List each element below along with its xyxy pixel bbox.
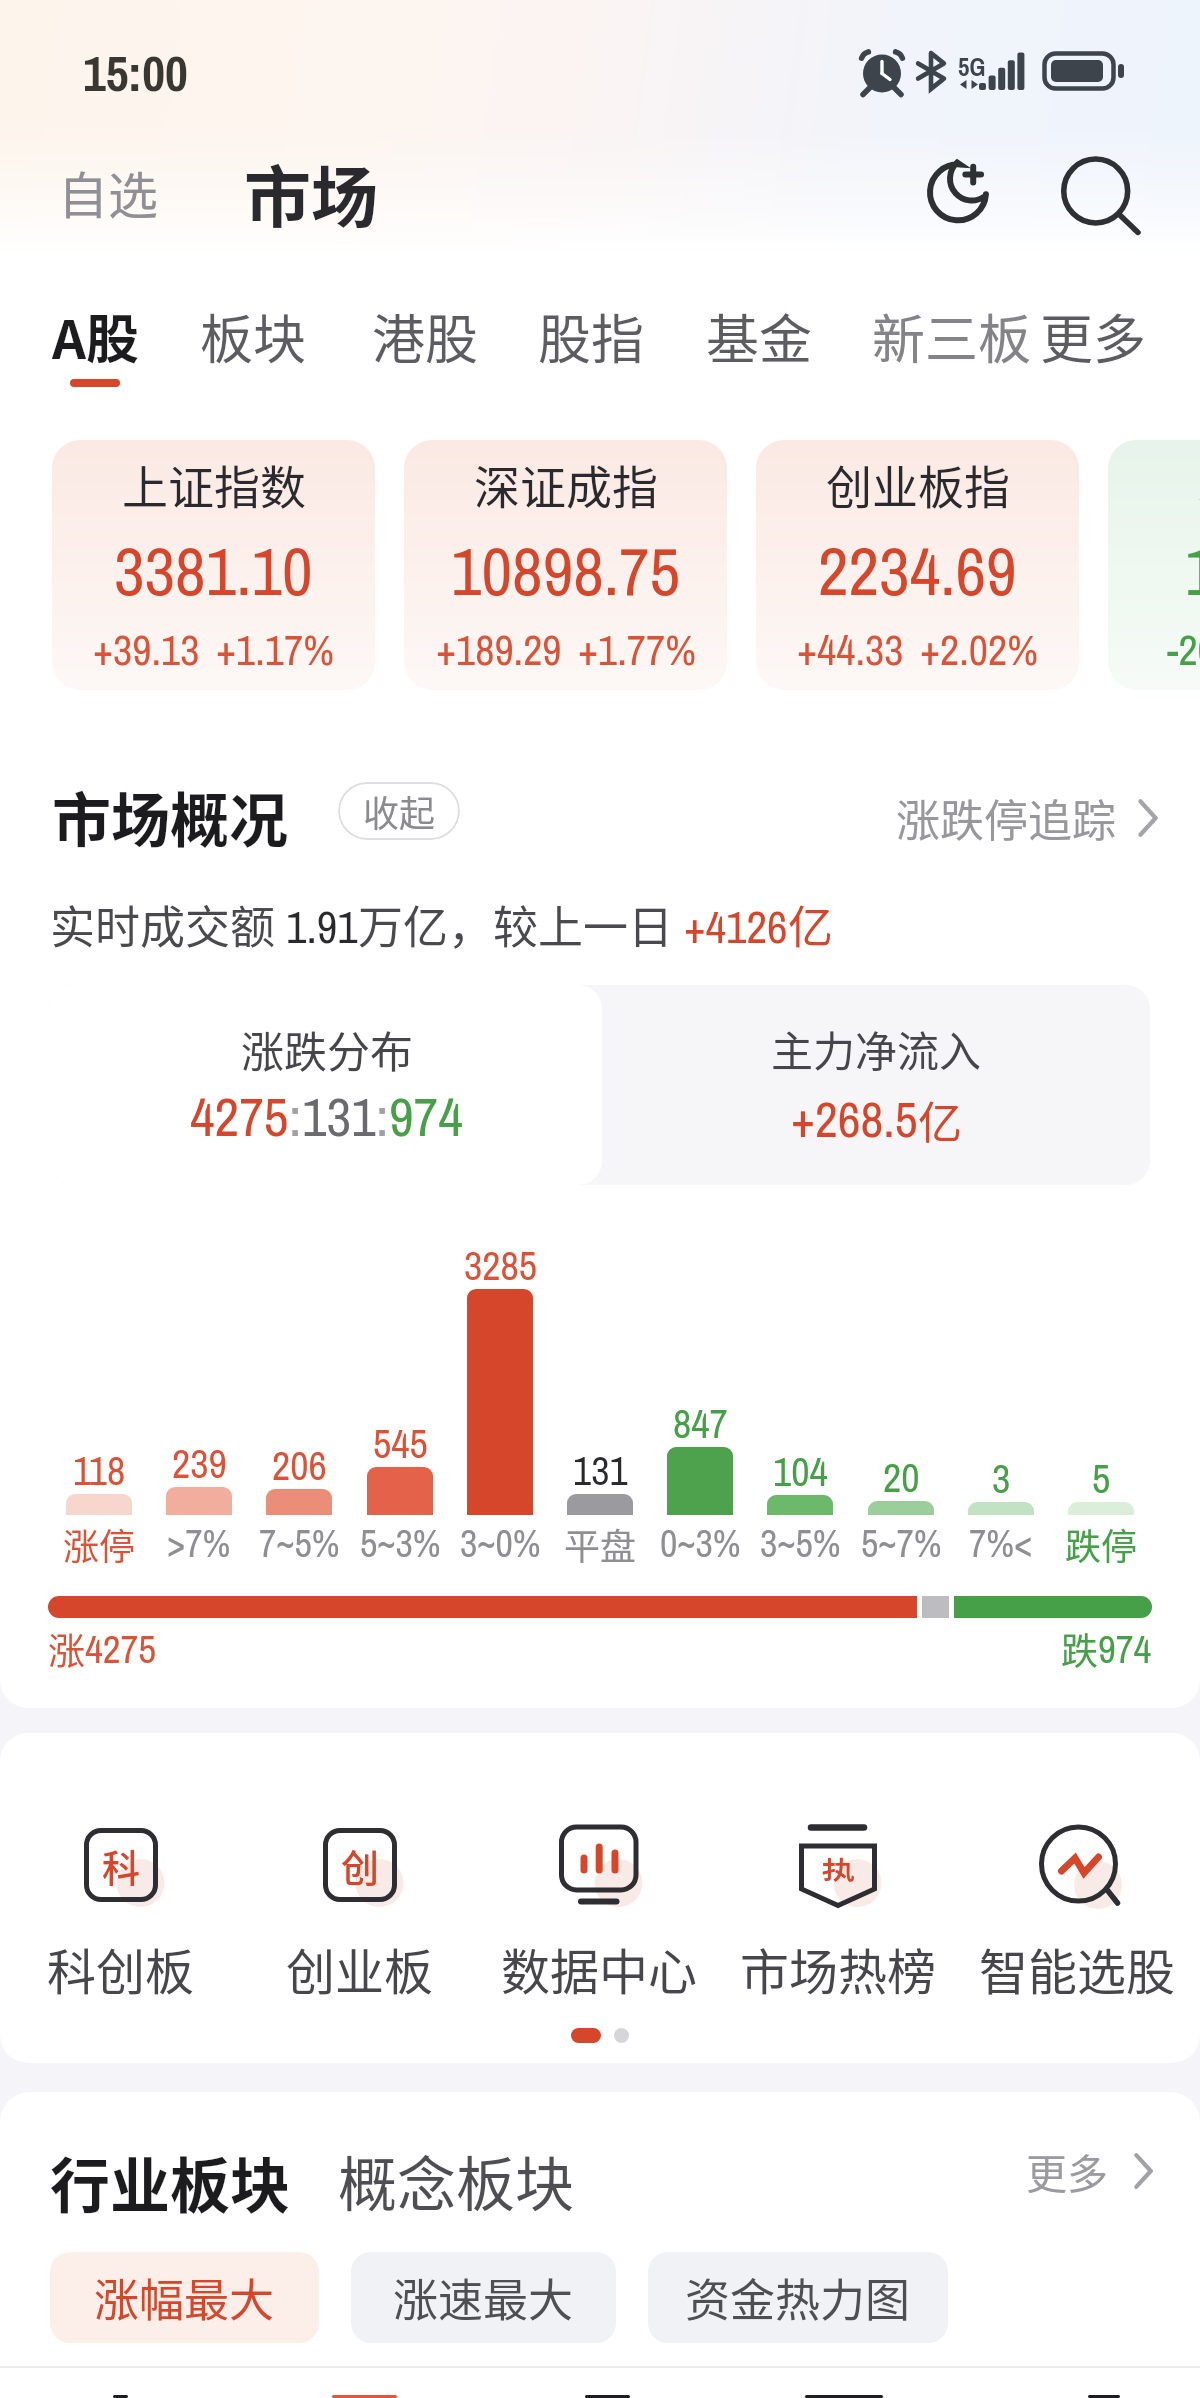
staticText: 5~3% xyxy=(360,1518,441,1569)
button[interactable]: 板块 xyxy=(188,288,318,385)
button[interactable]: 市场概况 xyxy=(38,764,303,869)
button[interactable]: 市场 xyxy=(230,132,392,252)
staticText: 跌 xyxy=(1061,1622,1098,1676)
staticText: 545 xyxy=(373,1417,428,1471)
staticText: 974 xyxy=(1098,1623,1152,1676)
button[interactable]: 更多 xyxy=(1018,2133,1161,2208)
staticText: 3381.10 xyxy=(114,526,313,616)
button[interactable]: 港股 xyxy=(360,288,490,385)
button[interactable]: 科 xyxy=(11,1748,231,1968)
staticText: 更多 xyxy=(1026,2141,1108,2200)
staticText: 206 xyxy=(272,1439,327,1493)
staticText: 市场 xyxy=(244,144,378,240)
staticText: 847 xyxy=(673,1397,728,1451)
staticText: 市场热榜 xyxy=(740,1933,937,2004)
button[interactable]: 创 xyxy=(250,1748,470,1968)
staticText: 创业板指 xyxy=(826,451,1010,518)
button[interactable]: Tab 2 xyxy=(244,2367,484,2398)
button[interactable]: Tab 5 xyxy=(984,2367,1200,2398)
staticText: 市场概况 xyxy=(52,774,289,859)
button[interactable]: 资金热力图 xyxy=(648,2252,948,2343)
staticText: : xyxy=(289,1080,302,1153)
button[interactable]: 行业板块 xyxy=(36,2128,304,2235)
staticText: 131 xyxy=(573,1444,628,1498)
staticText: 涨幅最大 xyxy=(94,2265,275,2330)
button[interactable]: 概念板块 xyxy=(324,2128,589,2233)
button[interactable]: 上证指数 xyxy=(52,440,375,690)
staticText: 科创板 xyxy=(47,1933,195,2004)
button[interactable]: 热 xyxy=(728,1748,948,1968)
staticText: +189.29 xyxy=(436,622,562,679)
staticText: 板块 xyxy=(200,298,306,375)
staticText: 涨跌停追踪 xyxy=(896,786,1116,850)
staticText: : xyxy=(376,1080,389,1153)
staticText: +4126 xyxy=(684,896,788,957)
staticText: 涨速最大 xyxy=(393,2265,574,2330)
staticText: 深证成指 xyxy=(474,451,658,518)
staticText: 更多 xyxy=(1040,298,1146,375)
button[interactable]: 收起 xyxy=(338,782,460,840)
staticText: 5~7% xyxy=(861,1518,942,1569)
staticText: 基金 xyxy=(706,298,812,375)
staticText: +1.77% xyxy=(578,622,696,679)
button[interactable]: 创业板指 xyxy=(756,440,1079,690)
staticText: +39.13 xyxy=(93,622,200,679)
staticText: 1.91 xyxy=(286,896,358,957)
button[interactable]: 自选 xyxy=(40,142,176,242)
staticText: 1389.2 xyxy=(1185,526,1200,616)
button[interactable]: 涨幅最大 xyxy=(50,2252,319,2343)
staticText: 创 xyxy=(341,1838,380,1893)
button[interactable]: 涨速最大 xyxy=(351,2252,616,2343)
staticText: 数据中心 xyxy=(501,1933,698,2004)
staticText: 7%< xyxy=(969,1518,1033,1569)
staticText: 131 xyxy=(302,1080,376,1153)
staticText: 概念板块 xyxy=(338,2138,575,2223)
staticText: 创业板 xyxy=(286,1933,434,2004)
button[interactable]: 涨跌停追踪 xyxy=(888,778,1166,858)
staticText: +2.02% xyxy=(920,622,1038,679)
button[interactable]: Tab 1 xyxy=(0,2367,240,2398)
staticText: 智能选股 xyxy=(979,1933,1176,2004)
button[interactable]: 基金 xyxy=(694,288,824,385)
button[interactable]: 北证50 xyxy=(1108,440,1200,690)
staticText: 4275 xyxy=(190,1080,289,1153)
staticText: A股 xyxy=(52,298,139,375)
staticText: 跌停 xyxy=(1065,1518,1138,1570)
button[interactable]: Tab 3 xyxy=(487,2367,727,2398)
button[interactable]: 数据中心 xyxy=(489,1748,709,1968)
button[interactable]: 新三板 xyxy=(860,288,1043,385)
button[interactable]: Search xyxy=(1042,140,1162,260)
button[interactable]: 智能选股 xyxy=(967,1748,1187,1968)
button[interactable]: A股 xyxy=(40,288,151,385)
staticText: 104 xyxy=(773,1445,828,1499)
staticText: 新三板 xyxy=(872,298,1031,375)
staticText: 974 xyxy=(389,1080,463,1153)
staticText: 涨跌分布 xyxy=(241,1018,413,1080)
staticText: 涨 xyxy=(48,1622,85,1676)
staticText: +268.5 xyxy=(791,1085,918,1152)
staticText: 涨停 xyxy=(63,1518,136,1570)
staticText: 行业板块 xyxy=(50,2138,290,2225)
staticText: +1.17% xyxy=(216,622,334,679)
staticText: 118 xyxy=(73,1444,126,1498)
staticText: 7~5% xyxy=(259,1518,340,1569)
button[interactable]: 更多 xyxy=(1028,288,1158,385)
staticText: 20 xyxy=(883,1451,920,1505)
staticText: 3 xyxy=(992,1452,1011,1506)
staticText: +44.33 xyxy=(797,622,904,679)
staticText: 2234.69 xyxy=(818,526,1017,616)
button[interactable]: Night mode xyxy=(904,135,1024,255)
staticText: 4275 xyxy=(85,1623,157,1676)
button[interactable]: Tab 4 xyxy=(724,2367,964,2398)
button[interactable]: 股指 xyxy=(526,288,656,385)
button[interactable]: 涨跌分布 xyxy=(50,985,602,1185)
staticText: 主力净流入 xyxy=(771,1018,982,1079)
button[interactable]: 主力净流入 xyxy=(602,985,1150,1185)
staticText: 平盘 xyxy=(564,1518,637,1570)
button[interactable]: 深证成指 xyxy=(404,440,727,690)
staticText: 239 xyxy=(172,1437,227,1491)
staticText: 5 xyxy=(1092,1452,1111,1506)
staticText: >7% xyxy=(167,1518,231,1569)
staticText: 万亿，较上一日 xyxy=(358,892,684,957)
staticText: 上证指数 xyxy=(122,451,306,518)
